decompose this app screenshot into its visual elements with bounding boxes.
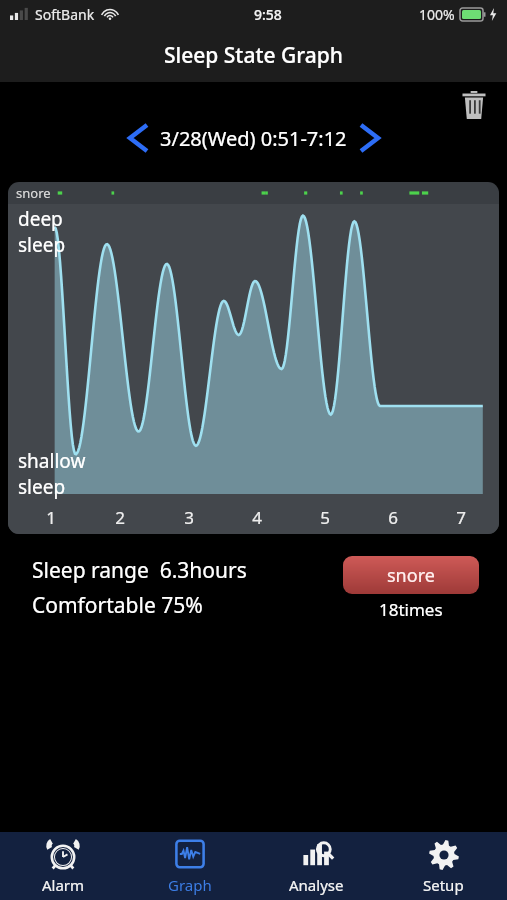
button[interactable]: Setup: [380, 832, 507, 900]
staticText: Graph: [168, 875, 212, 895]
staticText: snore: [16, 184, 51, 202]
button[interactable]: Alarm: [0, 832, 126, 900]
staticText: Sleep range 6.3hours: [32, 556, 247, 585]
staticText: Analyse: [289, 875, 344, 895]
staticText: 3/28(Wed) 0:51-7:12: [160, 125, 347, 152]
staticText: 9:58: [254, 5, 282, 24]
button[interactable]: snore: [8, 182, 499, 534]
staticText: 100%: [419, 5, 455, 24]
button[interactable]: Analyse: [253, 832, 380, 900]
staticText: 3: [184, 506, 194, 529]
button[interactable]: Delete: [453, 84, 495, 126]
staticText: deep: [18, 206, 63, 232]
staticText: Alarm: [42, 875, 85, 895]
button[interactable]: Next day: [347, 116, 391, 160]
staticText: sleep: [18, 474, 66, 500]
staticText: SoftBank: [35, 5, 95, 24]
button[interactable]: Previous day: [116, 116, 160, 160]
staticText: 4: [252, 506, 262, 529]
staticText: shallow: [18, 448, 86, 474]
staticText: 2: [115, 506, 125, 529]
staticText: 18times: [379, 598, 443, 621]
staticText: Sleep State Graph: [164, 41, 343, 70]
staticText: snore: [387, 563, 435, 588]
staticText: sleep: [18, 232, 66, 258]
button[interactable]: snore: [343, 556, 479, 594]
staticText: Setup: [423, 875, 464, 895]
staticText: 5: [320, 506, 330, 529]
staticText: 7: [456, 506, 466, 529]
staticText: Comfortable 75%: [32, 591, 203, 620]
staticText: 6: [388, 506, 398, 529]
staticText: 1: [46, 506, 56, 529]
button[interactable]: Graph: [126, 832, 253, 900]
